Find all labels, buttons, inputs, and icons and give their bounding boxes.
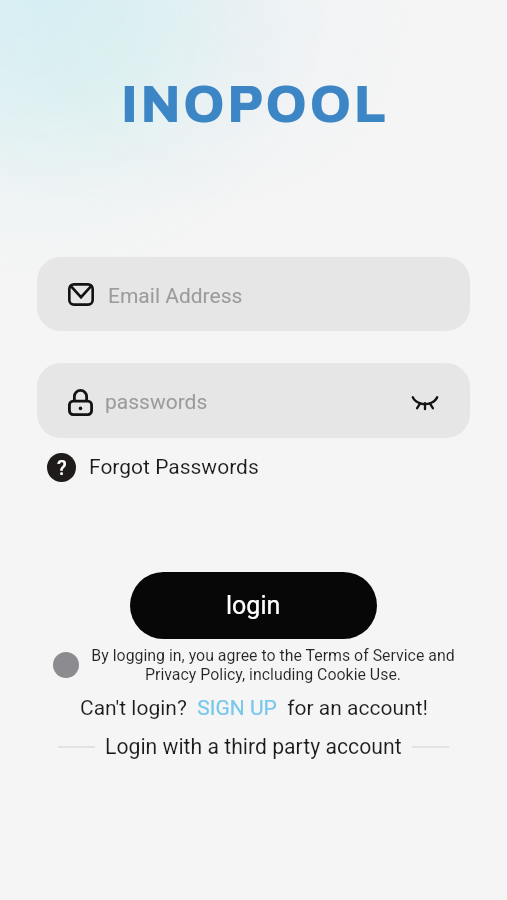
button[interactable]: login	[130, 572, 377, 639]
staticText: Login with a third party account	[105, 734, 402, 759]
button[interactable]: passwords	[37, 363, 470, 438]
staticText: ?	[57, 456, 67, 479]
button[interactable]: Can't login? SIGN UP for an account!	[80, 696, 428, 721]
staticText: Forgot Passwords	[89, 455, 259, 480]
button[interactable]: Show password	[408, 384, 442, 418]
button[interactable]: Agree to terms	[53, 652, 79, 678]
staticText: By logging in, you agree to the Terms of…	[85, 646, 461, 684]
staticText: login	[226, 591, 281, 620]
button[interactable]: Email Address	[37, 257, 470, 331]
staticText: INOPOOL	[121, 77, 389, 132]
staticText: Email Address	[108, 284, 243, 309]
button[interactable]: ?	[47, 451, 259, 484]
staticText: passwords	[105, 390, 408, 415]
